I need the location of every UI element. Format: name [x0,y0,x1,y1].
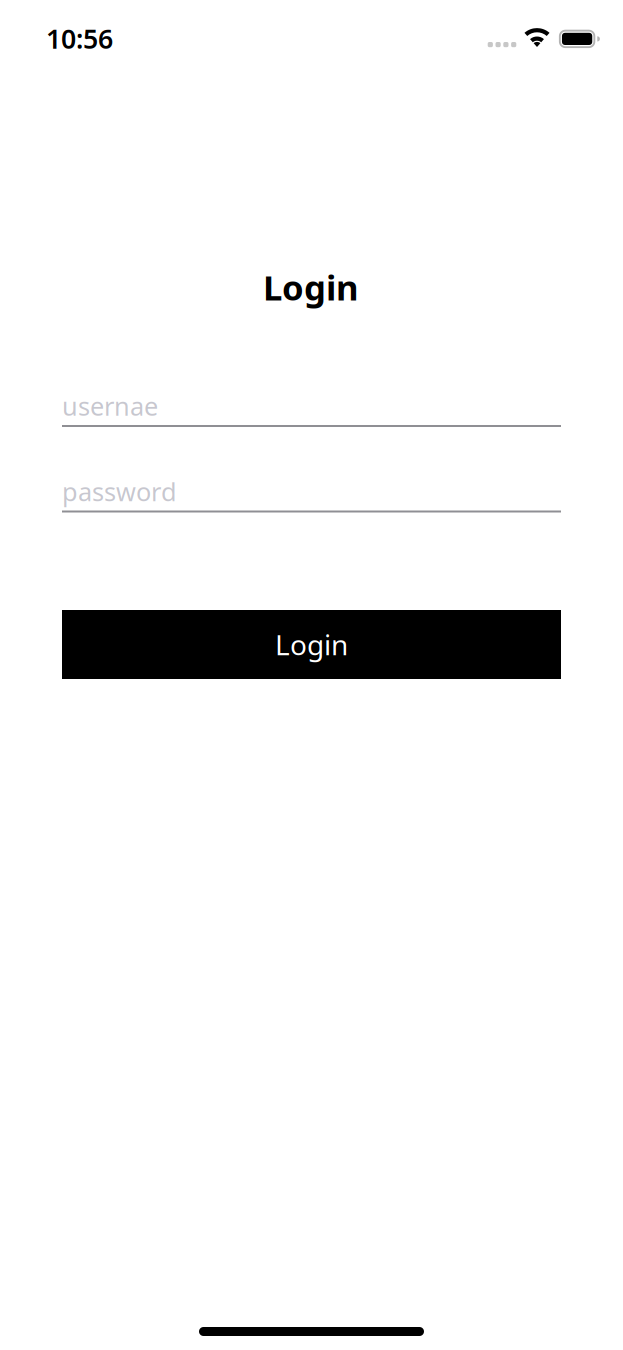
staticText: Login [275,626,348,663]
button[interactable]: Login [62,610,561,679]
button[interactable]: password [62,474,561,512]
staticText: 10:56 [46,21,113,56]
staticText: usernae [62,389,158,423]
staticText: password [62,474,177,508]
staticText: Login [263,264,359,310]
button[interactable]: usernae [62,389,561,427]
